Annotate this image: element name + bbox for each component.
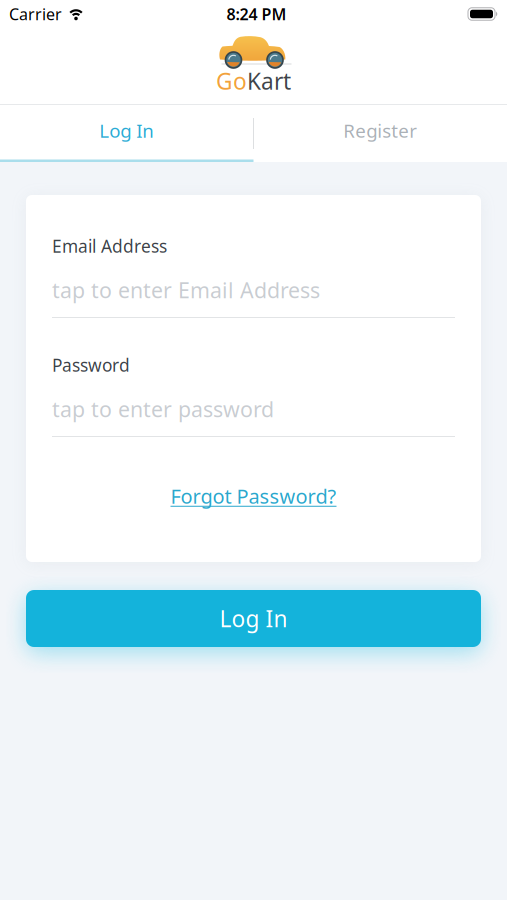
staticText: Log In [99,118,154,143]
staticText: Log In [219,603,287,633]
button[interactable]: Register [253,105,507,162]
button[interactable]: Forgot Password? [52,484,455,508]
staticText: 8:24 PM [226,3,286,25]
button[interactable]: Log In [26,590,481,647]
staticText: Register [343,118,417,143]
staticText: tap to enter Email Address [52,276,320,304]
staticText: Password [52,353,130,376]
staticText: Go [216,66,247,96]
staticText: Forgot Password? [170,483,336,509]
staticText: Carrier [9,3,62,25]
button[interactable]: Log In [0,105,253,162]
staticText: Kart [247,66,291,96]
staticText: Email Address [52,234,167,257]
staticText: tap to enter password [52,395,274,423]
